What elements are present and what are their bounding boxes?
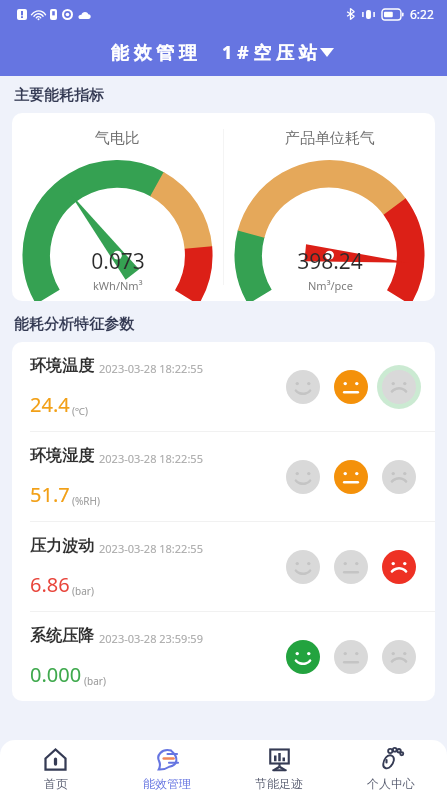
- staticText: 6:22: [410, 6, 434, 22]
- button[interactable]: 首页: [0, 740, 111, 797]
- button[interactable]: Rate bad: [377, 545, 421, 589]
- staticText: 6.86: [30, 571, 70, 598]
- staticText: 0.000: [30, 661, 82, 688]
- staticText: 2023-03-28 18:22:55: [99, 451, 203, 466]
- staticText: 系统压降: [30, 626, 94, 646]
- staticText: Nm³/pce: [308, 278, 353, 293]
- staticText: 24.4: [30, 391, 70, 418]
- staticText: 环境湿度: [30, 446, 94, 466]
- staticText: 环境温度: [30, 356, 94, 376]
- staticText: 节能足迹: [255, 776, 303, 791]
- button[interactable]: 环境湿度: [12, 432, 435, 521]
- staticText: (bar): [84, 674, 106, 688]
- staticText: 能耗分析特征参数: [14, 315, 134, 334]
- staticText: 个人中心: [367, 776, 415, 791]
- button[interactable]: 节能足迹: [223, 740, 335, 797]
- button[interactable]: Rate good: [281, 365, 325, 409]
- button[interactable]: Rate good: [281, 545, 325, 589]
- button[interactable]: Rate neutral: [329, 635, 373, 679]
- button[interactable]: 系统压降: [12, 612, 435, 701]
- button[interactable]: Rate neutral: [329, 545, 373, 589]
- button[interactable]: 能效管理: [111, 740, 223, 797]
- staticText: 能 效 管 理: [111, 40, 198, 65]
- button[interactable]: 环境温度: [12, 342, 435, 431]
- staticText: 产品单位耗气: [285, 129, 375, 148]
- staticText: (℃): [72, 404, 88, 418]
- staticText: 2023-03-28 23:59:59: [99, 631, 203, 646]
- staticText: 2023-03-28 18:22:55: [99, 541, 203, 556]
- staticText: 1 # 空 压 站: [222, 40, 317, 65]
- button[interactable]: Rate good: [281, 455, 325, 499]
- staticText: 压力波动: [30, 536, 94, 556]
- staticText: (%RH): [72, 494, 100, 508]
- button[interactable]: Rate bad: [377, 365, 421, 409]
- staticText: kWh/Nm³: [93, 278, 143, 293]
- button[interactable]: Rate good: [281, 635, 325, 679]
- staticText: (bar): [72, 584, 94, 598]
- button[interactable]: 压力波动: [12, 522, 435, 611]
- staticText: 主要能耗指标: [14, 86, 104, 105]
- button[interactable]: Rate bad: [377, 635, 421, 679]
- button[interactable]: Select station: [220, 35, 336, 70]
- staticText: 51.7: [30, 481, 70, 508]
- staticText: 能效管理: [143, 776, 191, 791]
- staticText: 398.24: [297, 247, 363, 276]
- button[interactable]: 个人中心: [335, 740, 447, 797]
- staticText: 气电比: [95, 129, 140, 148]
- button[interactable]: Rate neutral: [329, 365, 373, 409]
- button[interactable]: Rate bad: [377, 455, 421, 499]
- button[interactable]: Rate neutral: [329, 455, 373, 499]
- staticText: 首页: [44, 776, 68, 791]
- staticText: 2023-03-28 18:22:55: [99, 361, 203, 376]
- staticText: 0.073: [91, 247, 145, 276]
